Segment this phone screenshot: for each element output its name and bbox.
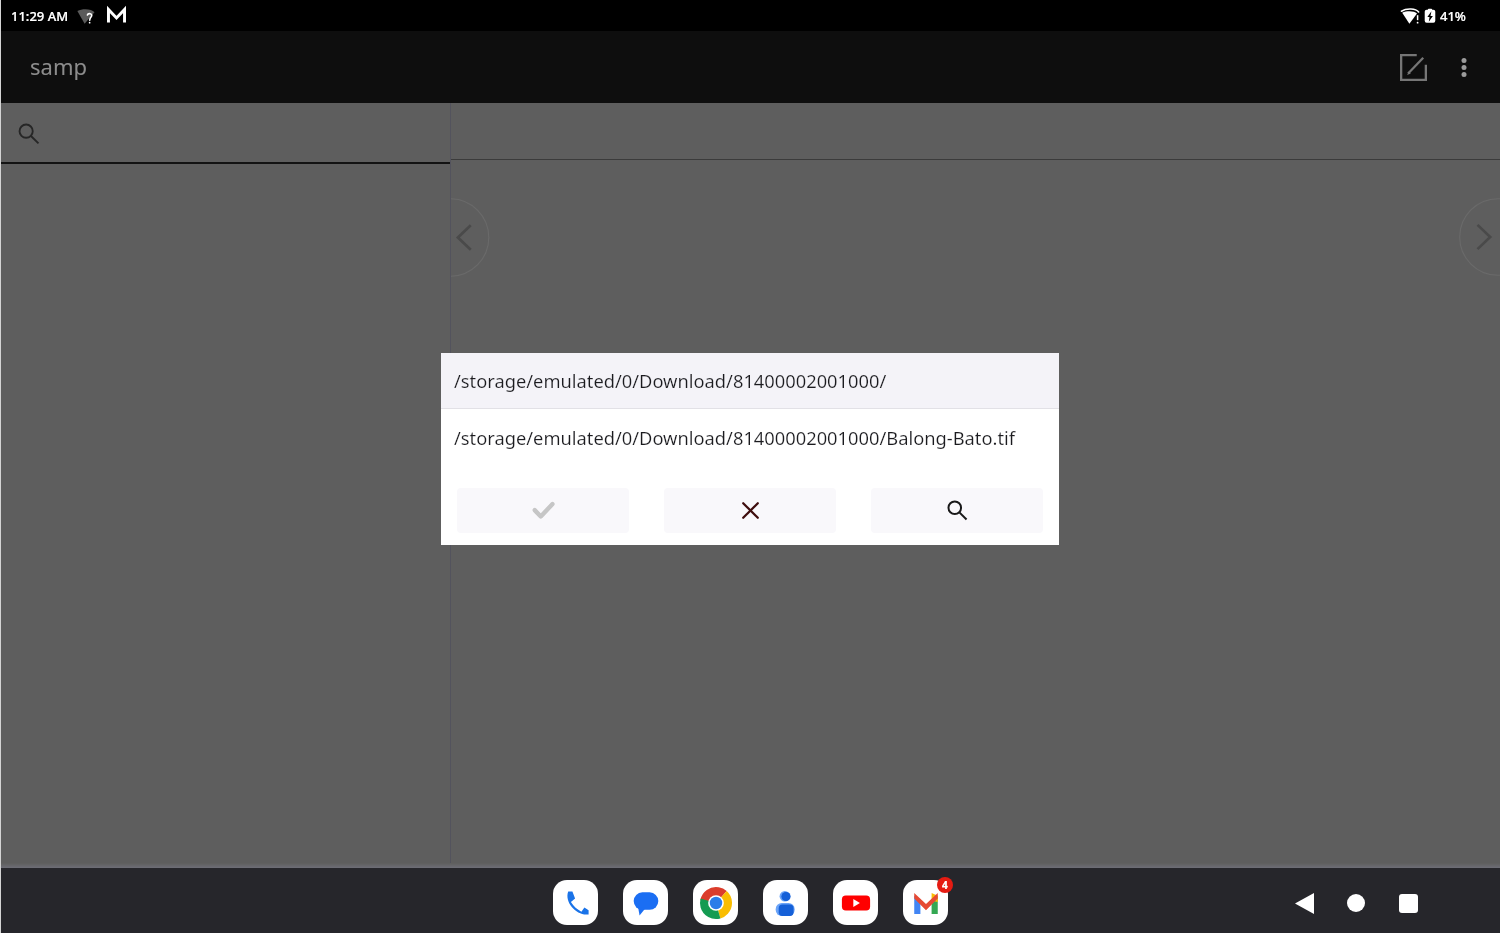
button[interactable]: /storage/emulated/0/Download/81400002001… <box>441 353 1059 408</box>
button[interactable]: Search <box>0 103 450 162</box>
button[interactable]: Previous <box>451 198 492 277</box>
button[interactable]: /storage/emulated/0/Download/81400002001… <box>441 409 1059 466</box>
button[interactable]: Recents <box>1395 890 1421 916</box>
button[interactable]: Chrome <box>693 880 738 925</box>
button[interactable]: YouTube <box>833 880 878 925</box>
staticText: samp <box>30 51 87 81</box>
button[interactable]: Next <box>1459 198 1500 276</box>
staticText: /storage/emulated/0/Download/81400002001… <box>454 368 887 393</box>
staticText: 11:29 AM <box>11 7 69 25</box>
staticText: /storage/emulated/0/Download/81400002001… <box>454 425 1016 450</box>
staticText: 4 <box>942 878 948 892</box>
button[interactable]: Messages <box>623 880 668 925</box>
button[interactable]: Accept <box>457 488 629 533</box>
staticText: 41% <box>1440 7 1466 25</box>
button[interactable]: Home <box>1343 890 1369 916</box>
button[interactable]: Cancel <box>664 488 836 533</box>
button[interactable]: Back <box>1291 890 1317 916</box>
button[interactable]: Contacts <box>763 880 808 925</box>
button[interactable]: Search <box>871 488 1043 533</box>
button[interactable]: More options <box>1440 44 1487 91</box>
button[interactable]: Gmail <box>903 880 948 925</box>
button[interactable]: Compose <box>1390 44 1437 91</box>
button[interactable]: Phone <box>553 880 598 925</box>
